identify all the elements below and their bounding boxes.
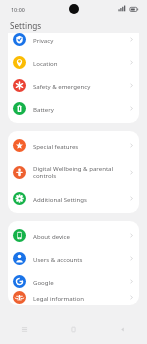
staticText: Privacy — [33, 36, 126, 44]
staticText: Safety & emergency — [33, 82, 126, 90]
button[interactable]: Battery — [8, 97, 139, 120]
staticText: Users & accounts — [33, 255, 126, 263]
button[interactable]: Privacy — [8, 33, 139, 51]
button[interactable]: Safety & emergency — [8, 74, 139, 97]
button[interactable]: Legal information — [8, 293, 139, 302]
button[interactable]: Additional Settings — [8, 187, 139, 210]
button[interactable]: Location — [8, 51, 139, 74]
button[interactable]: Special features — [8, 134, 139, 157]
staticText: Location — [33, 59, 126, 67]
staticText: Special features — [33, 142, 126, 150]
staticText: Digital Wellbeing & parental controls — [33, 164, 126, 180]
button[interactable]: Users & accounts — [8, 247, 139, 270]
button[interactable]: About device — [8, 224, 139, 247]
staticText: Google — [33, 278, 126, 286]
staticText: Battery — [33, 105, 126, 113]
staticText: 10:00 — [11, 6, 25, 13]
staticText: Additional Settings — [33, 195, 126, 203]
staticText: Legal information — [33, 294, 126, 302]
staticText: Settings — [10, 20, 42, 31]
button[interactable]: Google — [8, 270, 139, 293]
staticText: About device — [33, 232, 126, 240]
button[interactable]: Digital Wellbeing & parental controls — [8, 157, 139, 187]
